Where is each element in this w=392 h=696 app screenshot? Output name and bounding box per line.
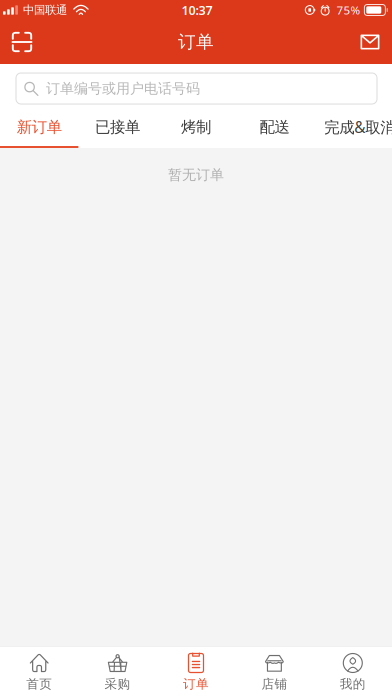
button[interactable]: 完成&取消 xyxy=(314,108,392,148)
staticText: 配送 xyxy=(259,117,289,137)
staticText: 中国联通 xyxy=(23,3,67,17)
button[interactable]: 消息 xyxy=(348,20,392,64)
button[interactable]: 采购 xyxy=(78,646,157,696)
button[interactable]: 配送 xyxy=(235,108,314,148)
staticText: 75% xyxy=(336,2,360,18)
button[interactable]: 扫一扫 xyxy=(0,20,44,64)
staticText: 订单 xyxy=(178,31,214,53)
button[interactable]: 已接单 xyxy=(78,108,157,148)
staticText: 烤制 xyxy=(181,117,211,137)
staticText: 订单编号或用户电话号码 xyxy=(46,80,200,97)
button[interactable]: 首页 xyxy=(0,646,78,696)
button[interactable]: 订单 xyxy=(157,646,235,696)
staticText: 首页 xyxy=(26,676,52,692)
staticText: 已接单 xyxy=(95,117,140,137)
button[interactable]: 新订单 xyxy=(0,108,78,148)
staticText: 完成&取消 xyxy=(324,116,392,137)
staticText: 10:37 xyxy=(181,1,212,19)
staticText: 采购 xyxy=(105,676,131,692)
staticText: 我的 xyxy=(340,676,366,692)
staticText: 店铺 xyxy=(261,676,287,692)
button[interactable]: 烤制 xyxy=(157,108,235,148)
button[interactable]: 我的 xyxy=(314,646,392,696)
staticText: 暂无订单 xyxy=(168,166,224,184)
button[interactable]: 店铺 xyxy=(235,646,314,696)
staticText: 订单 xyxy=(183,676,209,692)
staticText: 新订单 xyxy=(17,117,62,137)
